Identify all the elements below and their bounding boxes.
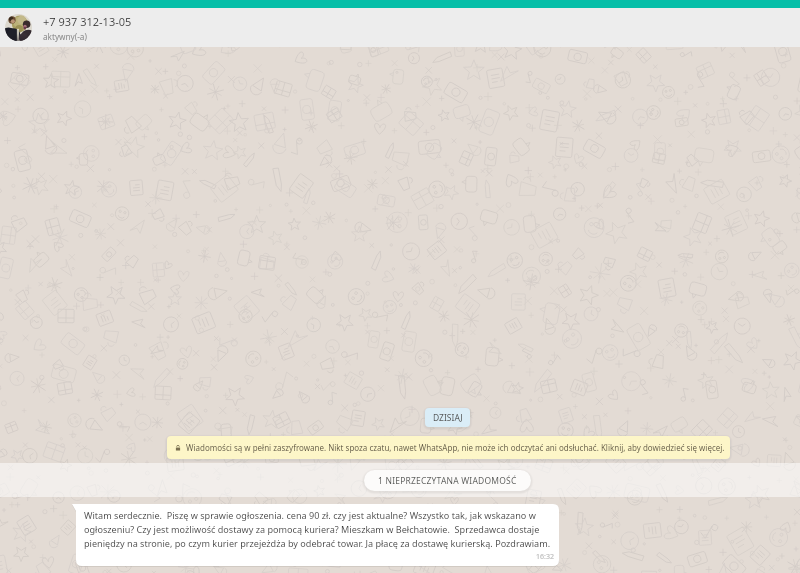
staticText: +7 937 312-13-05 xyxy=(43,14,132,29)
button[interactable]: Zdjęcie profilowe xyxy=(5,14,32,41)
button[interactable]: 1 NIEPRZECZYTANA WIADOMOŚĆ xyxy=(364,470,531,491)
staticText: DZISIAJ xyxy=(433,412,463,424)
staticText: Witam serdecznie. Piszę w sprawie ogłosz… xyxy=(84,509,551,549)
staticText: 1 NIEPRZECZYTANA WIADOMOŚĆ xyxy=(378,475,517,487)
staticText: aktywny(-a) xyxy=(43,31,87,42)
button[interactable]: Zdjęcie profilowe xyxy=(0,8,800,47)
button[interactable]: DZISIAJ xyxy=(425,408,470,427)
staticText: 16:32 xyxy=(536,552,554,562)
button[interactable]: Wiadomości są w pełni zaszyfrowane. Nikt… xyxy=(167,436,730,459)
button[interactable]: Witam serdecznie. Piszę w sprawie ogłosz… xyxy=(72,505,559,567)
staticText: Wiadomości są w pełni zaszyfrowane. Nikt… xyxy=(186,442,725,453)
